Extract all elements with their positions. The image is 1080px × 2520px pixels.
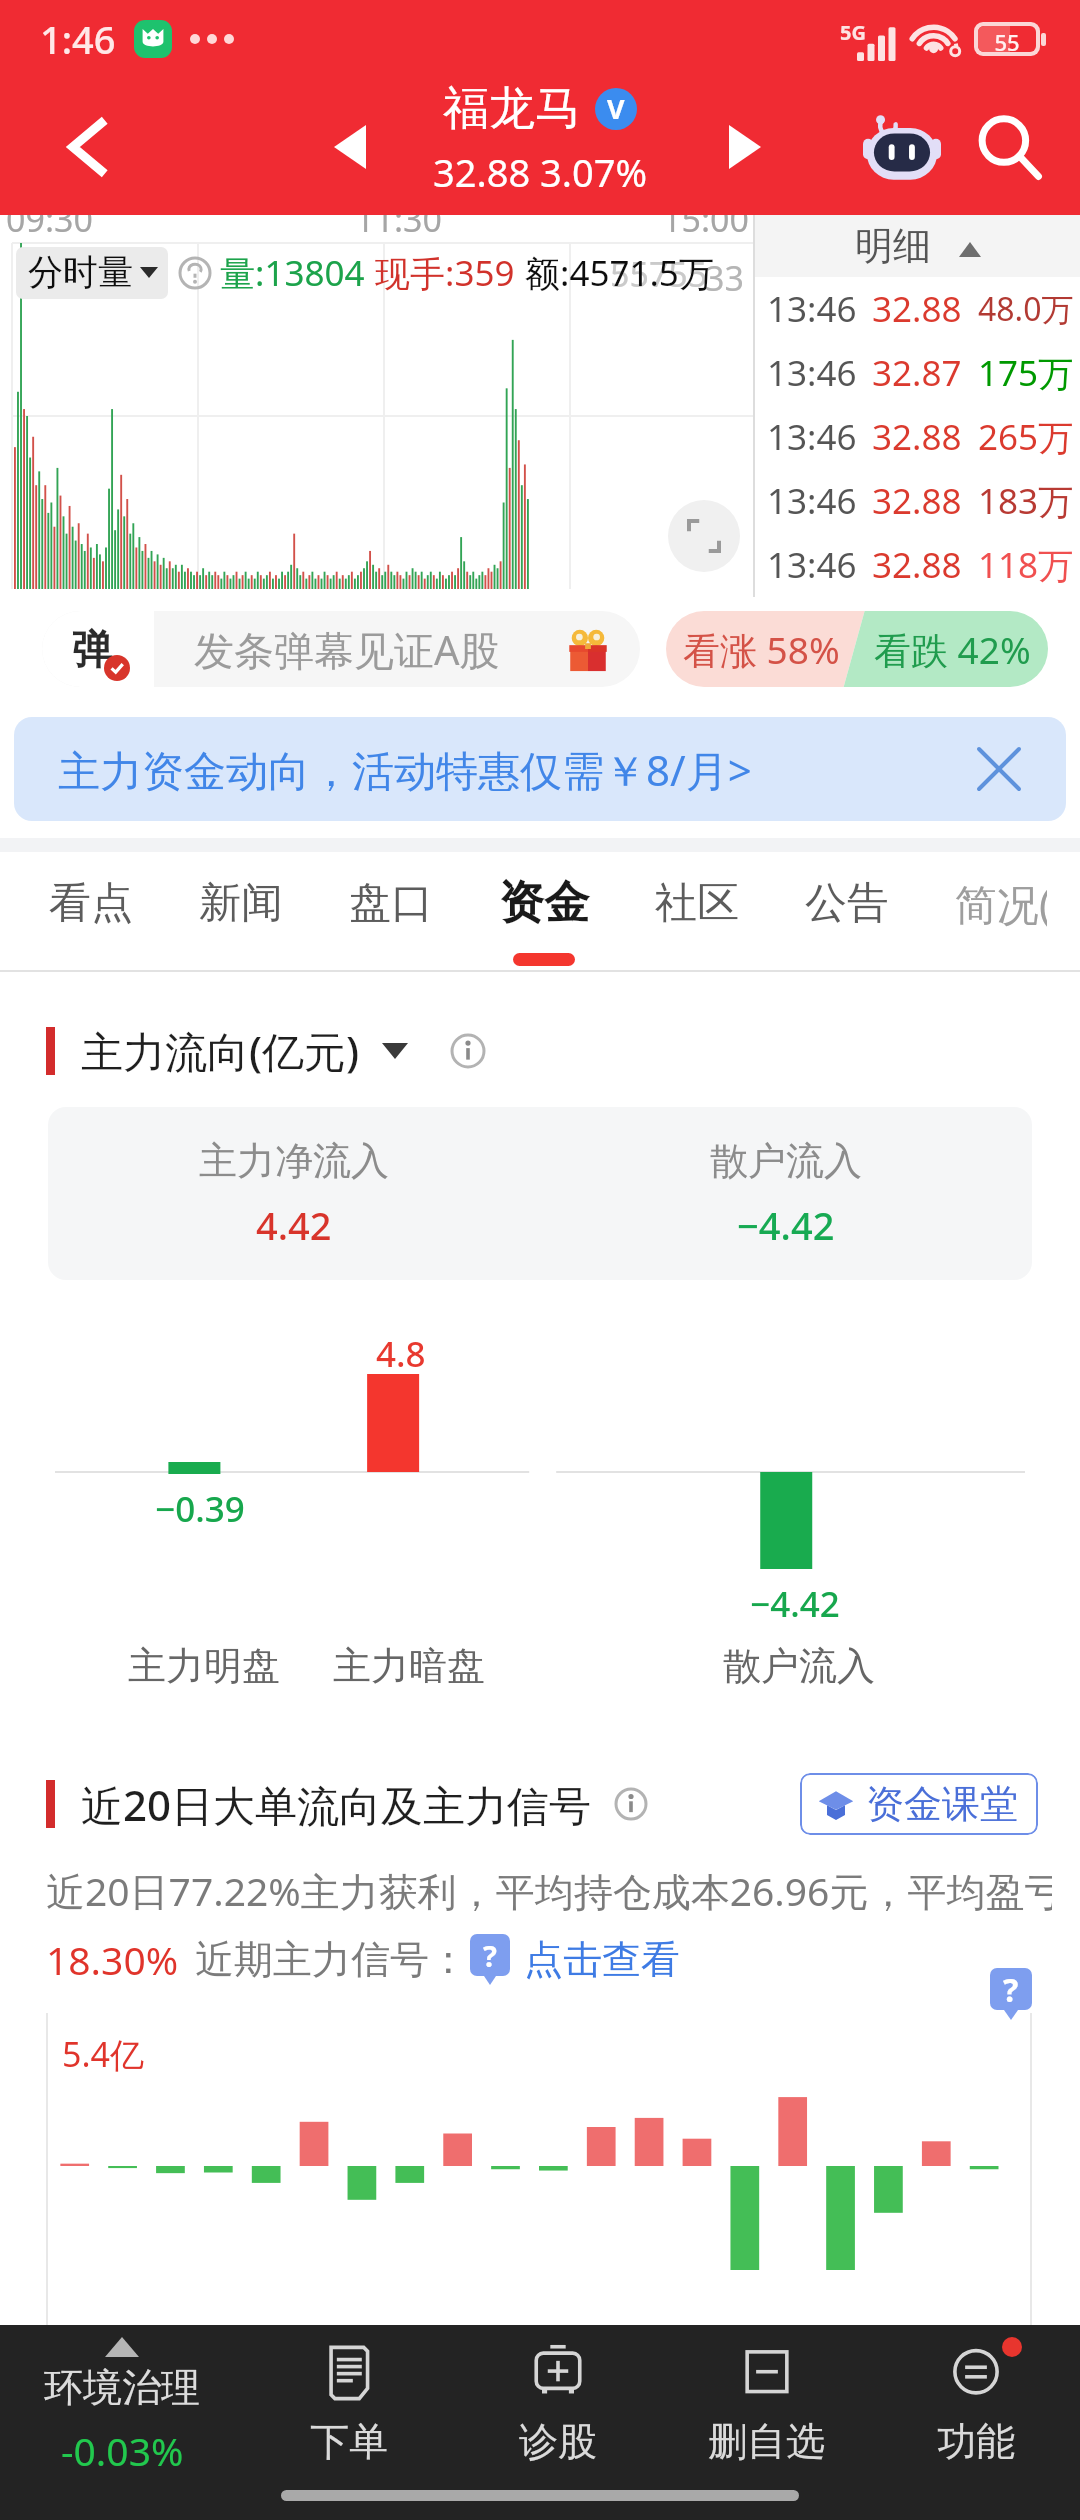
staticText: 118万 <box>978 541 1074 589</box>
staticText: 主力暗盘 <box>333 1642 485 1690</box>
staticText: 48.0万 <box>978 287 1074 331</box>
staticText: 32.88 3.07% <box>433 146 647 198</box>
staticText: 4.8 <box>376 1330 426 1378</box>
staticText: 新闻 <box>199 877 283 930</box>
staticText: 32.87 <box>872 349 962 397</box>
button[interactable]: 明细 <box>755 215 1080 277</box>
button[interactable]: 删自选 <box>662 2337 871 2470</box>
button[interactable]: 功能 <box>871 2337 1080 2470</box>
button[interactable]: 盘口 <box>316 852 466 972</box>
staticText: V <box>607 90 625 127</box>
staticText: 13:46 <box>767 413 857 461</box>
staticText: 盘口 <box>349 877 433 930</box>
button[interactable]: 环境治理 <box>0 2337 244 2470</box>
staticText: 11:30 <box>355 196 442 242</box>
button[interactable]: 点击查看 <box>524 1935 680 1984</box>
button[interactable]: 看涨 58% <box>666 611 1048 687</box>
button[interactable]: 主力资金动向，活动特惠仅需￥8/月> <box>14 717 1066 821</box>
staticText: 资金课堂 <box>866 1780 1018 1828</box>
staticText: 13:46 <box>767 477 857 525</box>
button[interactable]: 资金课堂 <box>800 1773 1038 1835</box>
staticText: 诊股 <box>519 2417 597 2466</box>
staticText: 资金 <box>499 875 589 932</box>
button[interactable]: AI assistant <box>842 87 962 207</box>
staticText: 量:13804 <box>220 249 365 297</box>
staticText: 弹 <box>72 624 112 674</box>
staticText: 主力净流入 <box>199 1137 389 1185</box>
staticText: 环境治理 <box>44 2363 200 2412</box>
staticText: 分时量 <box>28 250 133 294</box>
button[interactable]: 下单 <box>244 2337 453 2470</box>
staticText: −4.42 <box>750 1580 840 1628</box>
staticText: 额:4571.5万 <box>525 249 714 297</box>
button[interactable]: Signal help <box>470 1934 510 1976</box>
button[interactable]: Back <box>0 78 176 215</box>
staticText: 15:00 <box>662 196 749 242</box>
button[interactable]: Info <box>614 1787 648 1821</box>
button[interactable]: Search <box>944 82 1074 212</box>
staticText: 近20日77.22%主力获利，平均持仓成本26.96元，平均盈亏 <box>46 1864 1052 1917</box>
button[interactable]: 新闻 <box>166 852 316 972</box>
staticText: ? <box>483 1936 497 1975</box>
staticText: 1:46 <box>40 13 116 65</box>
staticText: 33 <box>705 255 744 301</box>
staticText: 功能 <box>937 2417 1015 2466</box>
staticText: 13:46 <box>767 349 857 397</box>
staticText: 现手:359 <box>375 249 515 297</box>
button[interactable]: 弹 <box>42 611 640 687</box>
button[interactable]: 13:46 <box>755 469 1080 533</box>
staticText: 32.88 <box>872 413 962 461</box>
staticText: 看点 <box>49 877 133 930</box>
staticText: 福龙马 <box>443 80 581 138</box>
staticText: 主力资金动向，活动特惠仅需￥8/月> <box>58 741 752 798</box>
staticText: −0.39 <box>155 1485 245 1533</box>
button[interactable]: Help <box>990 1968 1032 2010</box>
staticText: 4.42 <box>256 1199 332 1251</box>
button[interactable]: 13:46 <box>755 533 1080 597</box>
staticText: 看涨 58% <box>683 624 840 675</box>
staticText: 5.4亿 <box>62 2031 145 2077</box>
button[interactable]: Previous stock <box>305 102 395 192</box>
button[interactable]: Close <box>964 734 1034 804</box>
staticText: 散户流入 <box>710 1137 862 1185</box>
button[interactable]: 13:46 <box>755 341 1080 405</box>
staticText: -0.03% <box>61 2424 184 2470</box>
staticText: −4.42 <box>737 1199 835 1251</box>
button[interactable]: 13:46 <box>755 277 1080 341</box>
staticText: 主力明盘 <box>128 1642 280 1690</box>
button[interactable]: 诊股 <box>453 2337 662 2470</box>
staticText: 175万 <box>978 349 1074 397</box>
staticText: 主力流向(亿元) <box>81 1022 360 1079</box>
button[interactable]: 简况(F <box>922 852 1080 972</box>
staticText: 社区 <box>655 877 739 930</box>
staticText: ? <box>1003 1968 1019 2010</box>
button[interactable]: Info <box>450 1033 486 1069</box>
button[interactable]: 社区 <box>622 852 772 972</box>
staticText: 09:30 <box>6 196 93 242</box>
staticText: 265万 <box>978 413 1074 461</box>
staticText: 下单 <box>310 2417 388 2466</box>
staticText: 55755 <box>610 251 708 297</box>
staticText: 发条弹幕见证A股 <box>194 622 500 677</box>
button[interactable]: 公告 <box>772 852 922 972</box>
staticText: 简况(F <box>955 875 1047 932</box>
staticText: 183万 <box>978 477 1074 525</box>
staticText: 13:46 <box>767 541 857 589</box>
button[interactable]: 13:46 <box>755 405 1080 469</box>
staticText: 散户流入 <box>723 1642 875 1690</box>
button[interactable]: 分时量 <box>16 247 168 299</box>
staticText: 32.88 <box>872 285 962 333</box>
button[interactable]: Next stock <box>700 102 790 192</box>
button[interactable]: 看点 <box>16 852 166 972</box>
button[interactable]: 资金 <box>466 852 622 972</box>
staticText: 55 <box>978 27 1036 53</box>
staticText: 18.30% <box>46 1933 179 1986</box>
button[interactable]: Fullscreen <box>668 500 740 572</box>
staticText: 公告 <box>805 877 889 930</box>
staticText: 近20日大单流向及主力信号 <box>81 1776 592 1833</box>
staticText: 看跌 42% <box>874 624 1031 675</box>
staticText: 13:46 <box>767 285 857 333</box>
staticText: 明细 <box>855 222 931 270</box>
staticText: 32.88 <box>872 477 962 525</box>
staticText: 32.88 <box>872 541 962 589</box>
